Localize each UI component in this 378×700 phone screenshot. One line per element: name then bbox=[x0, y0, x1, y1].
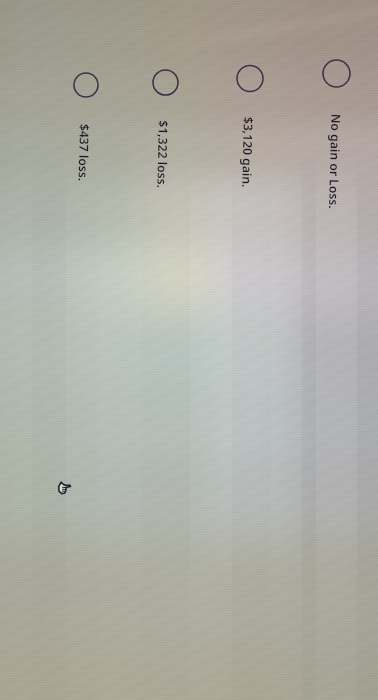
button[interactable]: $1,322 loss. bbox=[188, 0, 283, 700]
button[interactable]: $3,120 gain. bbox=[94, 0, 188, 700]
button[interactable]: No gain or Loss. bbox=[0, 0, 94, 700]
button[interactable]: $437 loss. bbox=[283, 0, 378, 700]
